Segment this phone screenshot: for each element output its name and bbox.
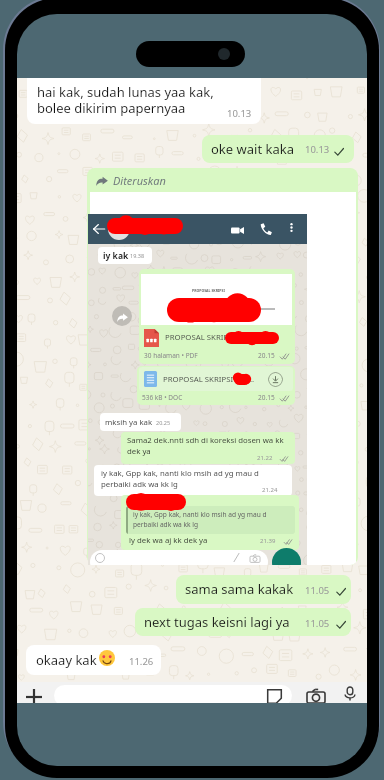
button[interactable]: Diteruskan [87, 168, 358, 565]
staticText: 20.15 [258, 393, 275, 402]
staticText: 536 kB • DOC [142, 393, 183, 402]
staticText: perbaiki adk wa kk lg [133, 520, 198, 529]
button[interactable]: sama sama kakak [176, 575, 351, 604]
staticText: iy kak, Gpp kak, nanti klo msih ad yg ma… [101, 468, 259, 479]
staticText: iy kak [103, 250, 129, 262]
staticText: 19.38 [130, 252, 145, 259]
staticText: 20.15 [258, 351, 275, 360]
staticText: 11.05 [305, 584, 330, 597]
other: Voice message [343, 687, 357, 701]
staticText: 10.13 [227, 107, 252, 120]
staticText: PROPOSAL SKRIPSI [163, 374, 234, 385]
other: Sticker [266, 688, 283, 703]
other: Camera [307, 688, 325, 703]
staticText: 11.05 [305, 617, 330, 630]
button[interactable]: oke wait kaka [202, 135, 354, 163]
staticText: .. [250, 374, 255, 385]
staticText: 20.25 [156, 419, 171, 426]
staticText: 10.13 [305, 143, 330, 156]
staticText: oke wait kaka [211, 140, 294, 158]
staticText: dek ya [127, 446, 151, 457]
staticText: ly dek wa aj kk dek ya [129, 535, 208, 546]
other: Video call [231, 224, 244, 237]
staticText: 21.24 [262, 486, 278, 494]
other: More options [287, 223, 296, 232]
other: Attach [26, 689, 42, 703]
staticText: bolee dikirim papernyaa [37, 99, 186, 117]
other: Back [93, 223, 105, 235]
button[interactable]: PROPOSAL SKRIPSI [137, 366, 295, 405]
staticText: sama sama kakak [185, 580, 294, 598]
staticText: iy kak, Gpp kak, nanti klo msih ad yg ma… [133, 510, 267, 519]
staticText: hai kak, sudah lunas yaa kak, [37, 83, 214, 101]
staticText: PROPOSAL SKRIPSI [165, 332, 236, 343]
staticText: PROPOSAL SKRIPSI [192, 288, 225, 293]
other: Voice call [260, 223, 272, 235]
staticText: next tugas keisni lagi ya [144, 613, 290, 631]
staticText: Sama2 dek.nnti sdh di koreksi dosen wa k… [127, 435, 284, 446]
button[interactable]: Send [272, 548, 301, 565]
staticText: 30 halaman • PDF [144, 351, 198, 360]
staticText: 21.39 [260, 537, 276, 545]
button[interactable] [54, 685, 292, 703]
staticText: okaay kak [36, 651, 97, 669]
staticText: perbaiki adk wa kk lg [101, 479, 178, 490]
button[interactable]: hai kak, sudah lunas yaa kak, [27, 78, 261, 124]
button[interactable]: next tugas keisni lagi ya [135, 608, 351, 636]
button[interactable]: Download [268, 372, 283, 387]
button[interactable]: PROPOSAL SKRIPSI [139, 269, 295, 364]
staticText: 21.22 [257, 454, 273, 462]
button[interactable] [90, 550, 268, 565]
button[interactable]: iy kak, Gpp kak, nanti klo msih ad yg ma… [94, 465, 292, 496]
staticText: 11.26 [129, 655, 154, 668]
staticText: mksih ya kak [105, 417, 153, 428]
button[interactable]: iy kak, Gpp kak, nanti klo msih ad yg ma… [121, 495, 299, 550]
button[interactable]: okaay kak [26, 645, 161, 675]
staticText: Diteruskan [113, 173, 166, 188]
